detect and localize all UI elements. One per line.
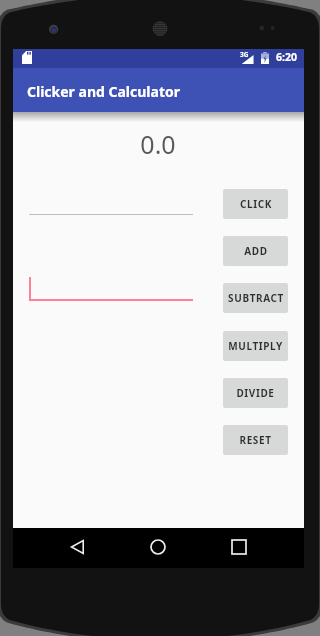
button[interactable]: Back xyxy=(67,537,87,557)
button[interactable]: SUBTRACT xyxy=(223,283,288,313)
staticText: RESET xyxy=(239,433,272,447)
staticText: 3G xyxy=(240,50,249,59)
button[interactable]: DIVIDE xyxy=(223,378,288,408)
button[interactable]: ADD xyxy=(223,236,288,266)
staticText: ADD xyxy=(244,244,268,258)
staticText: MULTIPLY xyxy=(228,339,283,353)
button[interactable]: MULTIPLY xyxy=(223,331,288,361)
staticText: Clicker and Calculator xyxy=(27,82,180,101)
button[interactable]: RESET xyxy=(223,425,288,455)
staticText: 0.0 xyxy=(139,127,177,161)
button[interactable]: Home xyxy=(148,537,168,557)
staticText: CLICK xyxy=(240,197,272,211)
staticText: SUBTRACT xyxy=(228,291,284,305)
button[interactable]: Clicker and Calculator xyxy=(13,68,304,112)
staticText: 6:20 xyxy=(276,50,297,64)
button[interactable]: Recent apps xyxy=(229,537,249,557)
staticText: DIVIDE xyxy=(236,386,275,400)
button[interactable]: CLICK xyxy=(223,189,288,219)
